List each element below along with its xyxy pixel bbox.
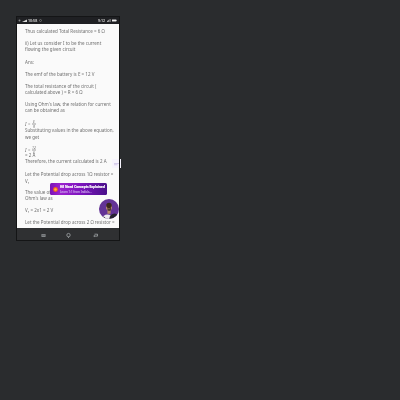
staticText: The value of V₁ can be obtained from [25,189,103,195]
staticText: The emf of the battery is E = 12 V [25,71,95,77]
button[interactable]: Talk to a tutor [99,199,119,219]
button[interactable]: Hi! Need Concepts Explained? [50,183,107,195]
staticText: E [33,119,35,124]
button[interactable]: Recent apps [37,229,49,241]
staticText: = 2 A [25,152,36,158]
button[interactable]: Back [89,229,101,241]
staticText: Substituting values in the above equatio… [25,127,114,133]
staticText: Therefore, the current calculated is 2 A [25,158,107,164]
staticText: 12 [32,145,36,150]
staticText: Let the Potential drop across 2 Ω resist… [25,219,115,225]
staticText: V₁ [25,178,30,184]
staticText: Let the Potential drop across 1Ω resisto… [25,171,114,177]
staticText: 10:58 [28,18,38,23]
staticText: ii) Let us consider I to be the current [25,40,102,46]
staticText: calculated above ) = R = 6 Ω [25,89,83,95]
staticText: R [33,124,36,129]
staticText: I [25,121,27,127]
staticText: Learn 1:1 from India’s... [60,190,92,194]
staticText: 6 [33,150,35,155]
staticText: can be obtained as [25,107,65,113]
staticText: = [28,147,31,153]
staticText: V₁ = 2x1 = 2 V [25,207,54,213]
staticText: Using Ohm's law, the relation for curren… [25,101,111,107]
staticText: = [28,121,31,127]
staticText: Ans: [25,59,35,65]
button[interactable]: Home [62,229,74,241]
staticText: The total resistance of the circuit ( [25,83,97,89]
staticText: we get [25,134,40,140]
staticText: Ohm's law as [25,195,53,201]
staticText: I [25,147,27,153]
button[interactable]: Ask a doubt [112,159,121,168]
staticText: Thus calculated Total Resistance = 6 Ω [25,28,105,34]
staticText: Hi! Need Concepts Explained? [60,185,105,189]
staticText: flowing the given circuit [25,46,76,52]
staticText: 9:12 [98,18,106,23]
